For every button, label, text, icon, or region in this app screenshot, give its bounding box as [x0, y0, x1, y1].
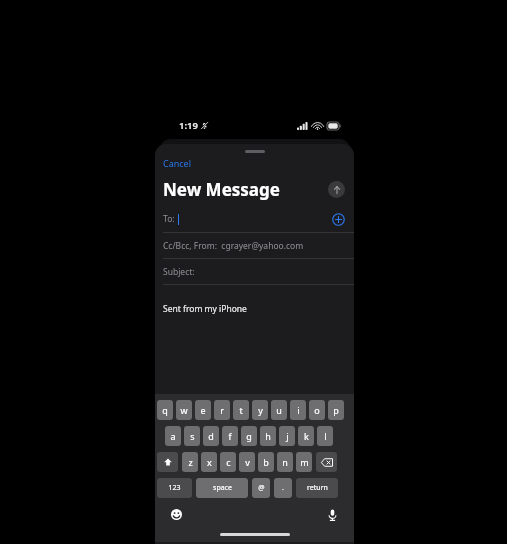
- staticText: u: [276, 404, 282, 416]
- staticText: Sent from my iPhone: [163, 303, 247, 315]
- button[interactable]: space: [196, 478, 248, 498]
- button[interactable]: k: [298, 426, 314, 446]
- button[interactable]: t: [233, 400, 249, 420]
- button[interactable]: return: [296, 478, 338, 498]
- staticText: t: [239, 404, 243, 416]
- button[interactable]: d: [203, 426, 219, 446]
- staticText: f: [228, 430, 232, 442]
- staticText: k: [304, 430, 309, 442]
- button[interactable]: h: [260, 426, 276, 446]
- button[interactable]: e: [195, 400, 211, 420]
- staticText: p: [333, 404, 339, 416]
- button[interactable]: x: [201, 452, 217, 472]
- button[interactable]: c: [220, 452, 236, 472]
- button[interactable]: @: [252, 478, 270, 498]
- staticText: s: [190, 430, 195, 442]
- staticText: Cc/Bcc, From: cgrayer@yahoo.com: [163, 240, 304, 252]
- staticText: n: [282, 456, 288, 468]
- staticText: To:: [163, 213, 175, 225]
- staticText: @: [258, 483, 265, 493]
- staticText: z: [188, 456, 193, 468]
- staticText: Subject:: [163, 266, 195, 278]
- button[interactable]: b: [258, 452, 274, 472]
- staticText: New Message: [163, 178, 280, 201]
- staticText: r: [220, 404, 224, 416]
- staticText: v: [245, 456, 250, 468]
- button[interactable]: s: [184, 426, 200, 446]
- button[interactable]: y: [252, 400, 268, 420]
- button[interactable]: g: [241, 426, 257, 446]
- staticText: d: [208, 430, 214, 442]
- button[interactable]: Cc/Bcc, From: cgrayer@yahoo.com: [155, 233, 354, 258]
- button[interactable]: Dictation: [326, 508, 339, 521]
- staticText: b: [263, 456, 269, 468]
- button[interactable]: Add contact: [332, 213, 345, 226]
- button[interactable]: 123: [157, 478, 192, 498]
- button[interactable]: a: [165, 426, 181, 446]
- button[interactable]: u: [271, 400, 287, 420]
- button[interactable]: j: [279, 426, 295, 446]
- staticText: i: [297, 404, 300, 416]
- button[interactable]: o: [309, 400, 325, 420]
- button[interactable]: r: [214, 400, 230, 420]
- button[interactable]: Sent from my iPhone: [155, 285, 354, 394]
- button[interactable]: z: [182, 452, 198, 472]
- button[interactable]: Send: [328, 181, 345, 198]
- staticText: o: [314, 404, 320, 416]
- staticText: Cancel: [163, 157, 192, 169]
- staticText: h: [265, 430, 271, 442]
- staticText: y: [258, 404, 263, 416]
- staticText: w: [180, 404, 188, 416]
- button[interactable]: Cancel: [155, 155, 192, 171]
- button[interactable]: l: [317, 426, 333, 446]
- staticText: 1:19: [179, 119, 198, 132]
- button[interactable]: w: [176, 400, 192, 420]
- staticText: x: [207, 456, 212, 468]
- button[interactable]: Key: [316, 452, 337, 472]
- staticText: a: [170, 430, 176, 442]
- button[interactable]: p: [328, 400, 344, 420]
- button[interactable]: Emoji: [170, 508, 183, 521]
- staticText: j: [286, 430, 289, 442]
- button[interactable]: n: [277, 452, 293, 472]
- button[interactable]: To:: [155, 206, 354, 232]
- staticText: q: [162, 404, 168, 416]
- staticText: e: [200, 404, 206, 416]
- staticText: c: [226, 456, 231, 468]
- button[interactable]: i: [290, 400, 306, 420]
- button[interactable]: Subject:: [155, 259, 354, 284]
- button[interactable]: f: [222, 426, 238, 446]
- staticText: .: [282, 483, 284, 493]
- staticText: m: [300, 456, 309, 468]
- button[interactable]: Key: [157, 452, 178, 472]
- staticText: g: [246, 430, 252, 442]
- staticText: space: [213, 483, 232, 493]
- button[interactable]: m: [296, 452, 312, 472]
- button[interactable]: q: [157, 400, 173, 420]
- button[interactable]: v: [239, 452, 255, 472]
- staticText: return: [307, 483, 328, 493]
- button[interactable]: .: [274, 478, 292, 498]
- staticText: l: [324, 430, 327, 442]
- staticText: 123: [168, 483, 181, 493]
